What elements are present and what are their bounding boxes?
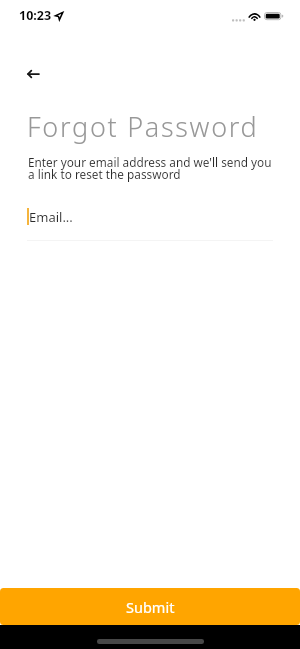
staticText: Email...	[29, 208, 73, 226]
staticText: Forgot Password	[27, 108, 259, 145]
button[interactable]: Back	[15, 55, 52, 92]
staticText: Enter your email address and we'll send …	[28, 154, 276, 183]
button[interactable]: Submit	[0, 588, 300, 625]
staticText: 10:23	[19, 7, 52, 24]
button[interactable]: Email...	[27, 206, 273, 241]
staticText: Submit	[126, 597, 175, 617]
